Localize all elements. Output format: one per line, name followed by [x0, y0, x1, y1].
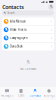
staticText: Calls: [18, 94, 24, 97]
button[interactable]: Alex Morgan: [2, 17, 54, 26]
button[interactable]: Settings: [42, 86, 56, 100]
staticText: Contacts: [2, 3, 24, 11]
staticText: Messages: [1, 94, 13, 97]
button[interactable]: Blake Rivera: [2, 26, 54, 34]
staticText: Casey Nguyen: [10, 36, 28, 40]
button[interactable]: Search: [2, 10, 54, 15]
staticText: Blake Rivera: [10, 28, 26, 31]
staticText: Contacts: [29, 94, 40, 97]
button[interactable]: Dana Shah: [2, 42, 54, 51]
button[interactable]: Account: [48, 4, 54, 10]
button[interactable]: Contacts: [28, 86, 42, 100]
staticText: Search: [7, 11, 15, 15]
button[interactable]: Messages: [0, 86, 14, 100]
staticText: Settings: [43, 94, 54, 97]
staticText: Alex Morgan: [10, 20, 26, 23]
staticText: Dana Shah: [10, 45, 23, 48]
staticText: No Contacts: [20, 67, 36, 71]
button[interactable]: Casey Nguyen: [2, 34, 54, 42]
button[interactable]: Calls: [14, 86, 28, 100]
